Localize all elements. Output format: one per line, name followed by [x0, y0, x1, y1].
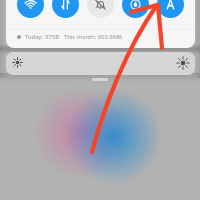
staticText: Today: 375B	[25, 33, 60, 41]
button[interactable]: Flashlight	[122, 0, 149, 18]
button[interactable]: Wi-Fi	[17, 0, 44, 18]
button[interactable]: Mobile data	[52, 0, 79, 18]
button[interactable]: Brightness	[6, 52, 195, 75]
button[interactable]: Auto rotate	[157, 0, 184, 18]
staticText: This month: 903.9MB	[64, 33, 122, 41]
button[interactable]: Do not disturb	[87, 0, 114, 18]
